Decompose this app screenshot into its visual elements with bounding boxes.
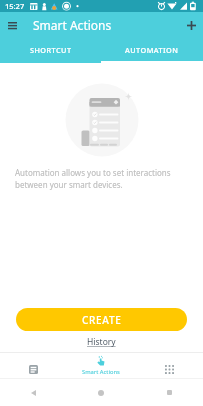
button[interactable]: Scenes [0,353,67,378]
button[interactable]: Apps [135,353,203,378]
button[interactable]: Add [181,15,201,35]
button[interactable]: History [83,335,120,349]
button[interactable]: Recents [135,379,203,406]
staticText: SHORTCUT [30,45,72,55]
button[interactable]: AUTOMATION [101,38,203,61]
button[interactable]: SHORTCUT [0,38,101,61]
staticText: 15:27 [5,1,25,11]
button[interactable]: Back [0,379,67,406]
staticText: Automation allows you to set interaction… [15,167,184,191]
staticText: CREATE [82,313,122,327]
button[interactable]: Menu [3,16,21,34]
button[interactable]: Home [67,379,135,406]
button[interactable]: Smart Actions [67,353,135,378]
button[interactable]: CREATE [16,308,187,331]
staticText: Smart Actions [82,368,120,376]
staticText: Smart Actions [33,17,112,33]
staticText: AUTOMATION [125,45,179,55]
staticText: History [87,336,116,348]
